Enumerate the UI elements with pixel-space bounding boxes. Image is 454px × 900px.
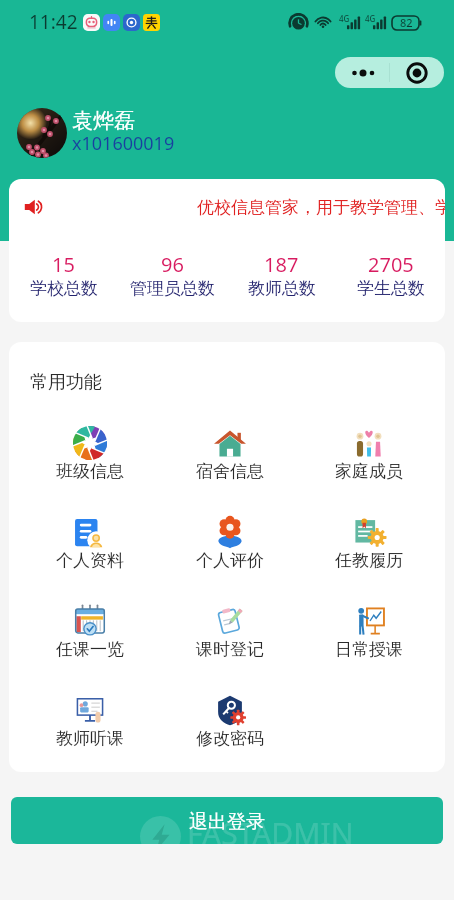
button[interactable]: 教师听课 [20,677,160,766]
staticText: 教师听课 [56,728,124,749]
button[interactable]: 187 [227,251,336,299]
staticText: 学校总数 [30,278,98,299]
staticText: 任课一览 [56,639,124,660]
staticText: 学生总数 [357,278,425,299]
staticText: 教师总数 [248,278,316,299]
staticText: 个人资料 [56,550,124,571]
button[interactable]: 修改密码 [160,677,299,766]
button[interactable]: Close [390,57,444,88]
staticText: FASTADMIN [187,813,354,844]
staticText: 82 [400,15,413,30]
button[interactable]: Avatar [17,108,67,158]
staticText: 优校信息管家，用于教学管理、学 [197,197,445,218]
button[interactable]: 课时登记 [160,588,299,677]
staticText: 15 [52,251,75,278]
staticText: x101600019 [72,131,175,155]
staticText: 11:42 [29,9,78,35]
staticText: 班级信息 [56,461,124,482]
staticText: 修改密码 [196,728,264,749]
button[interactable]: 个人评价 [160,499,299,588]
staticText: 个人评价 [196,550,264,571]
button[interactable]: More [335,57,389,88]
button[interactable]: 个人资料 [20,499,160,588]
button[interactable]: 15 [9,251,118,299]
button[interactable]: 任教履历 [299,499,438,588]
staticText: 课时登记 [196,639,264,660]
staticText: 管理员总数 [130,278,215,299]
button[interactable]: 96 [118,251,227,299]
staticText: 家庭成员 [335,461,403,482]
staticText: 袁烨磊 [72,108,135,134]
staticText: 4G [339,13,350,24]
staticText: 96 [161,251,184,278]
button[interactable]: 2705 [336,251,445,299]
staticText: 常用功能 [30,371,102,394]
button[interactable] [9,179,445,235]
staticText: 日常授课 [335,639,403,660]
staticText: 2705 [368,251,414,278]
button[interactable]: 日常授课 [299,588,438,677]
staticText: 退出登录 [189,810,265,834]
button[interactable]: 家庭成员 [299,410,438,499]
staticText: 宿舍信息 [196,461,264,482]
staticText: 任教履历 [335,550,403,571]
button[interactable]: 宿舍信息 [160,410,299,499]
button[interactable]: FASTADMIN [11,797,443,844]
staticText: 4G [365,13,376,24]
button[interactable]: 任课一览 [20,588,160,677]
button[interactable]: 班级信息 [20,410,160,499]
staticText: 187 [264,251,299,278]
